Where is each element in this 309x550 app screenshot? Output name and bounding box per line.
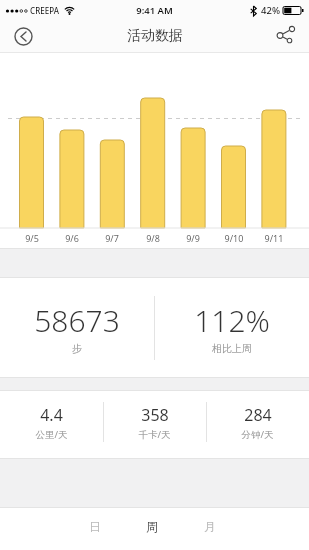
staticText: 284 <box>244 404 272 426</box>
button[interactable]: 周 <box>138 519 166 534</box>
staticText: 9:41 AM <box>136 4 173 17</box>
staticText: 9/6 <box>52 232 92 244</box>
button[interactable] <box>12 25 34 47</box>
staticText: 112% <box>194 300 270 341</box>
staticText: 58673 <box>34 300 120 341</box>
staticText: CREEPA <box>30 5 59 16</box>
staticText: 4.4 <box>40 404 63 426</box>
staticText: 相比上周 <box>212 342 252 355</box>
staticText: 活动数据 <box>127 27 183 45</box>
button[interactable]: 日 <box>81 519 109 534</box>
button[interactable] <box>275 25 297 47</box>
staticText: 千卡/天 <box>138 428 171 441</box>
staticText: 358 <box>141 404 169 426</box>
button[interactable]: 58673 <box>0 278 154 377</box>
staticText: 9/7 <box>92 232 132 244</box>
button[interactable]: 4.4 <box>0 391 103 458</box>
button[interactable]: 358 <box>103 391 206 458</box>
staticText: 步 <box>72 342 82 355</box>
button[interactable]: 284 <box>206 391 309 458</box>
button[interactable]: 112% <box>154 278 309 377</box>
staticText: 9/9 <box>173 232 213 244</box>
staticText: 公里/天 <box>35 428 68 441</box>
staticText: 9/10 <box>214 232 254 244</box>
staticText: 42% <box>261 4 280 17</box>
staticText: 9/8 <box>133 232 173 244</box>
staticText: 9/5 <box>12 232 52 244</box>
staticText: 9/11 <box>254 232 294 244</box>
staticText: 分钟/天 <box>241 428 274 441</box>
button[interactable]: 月 <box>196 519 224 534</box>
